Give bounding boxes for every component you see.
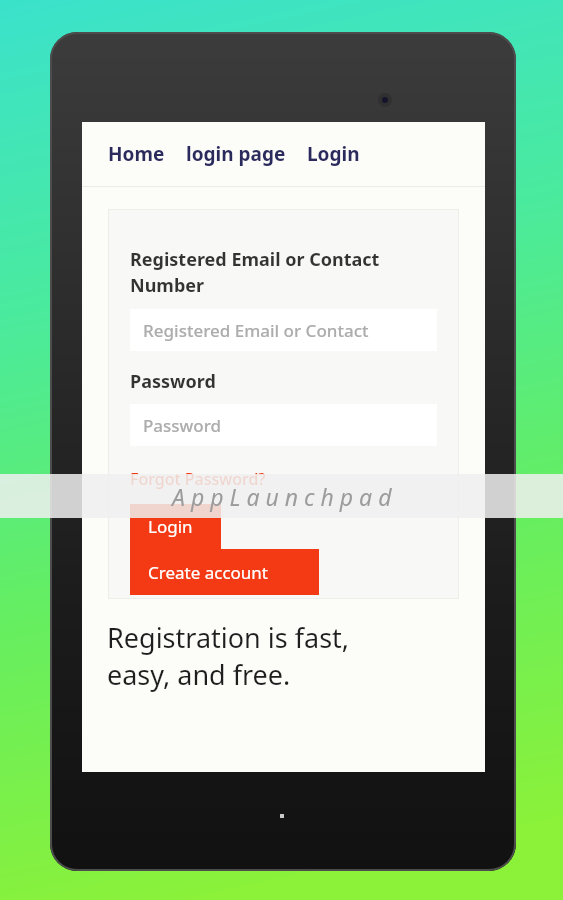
staticText: login page (186, 141, 286, 167)
staticText: Login (148, 515, 193, 538)
button[interactable]: Create account (130, 549, 319, 595)
staticText: A p p L a u n c h p a d (172, 481, 392, 512)
staticText: Create account (148, 561, 268, 584)
staticText: Forgot Password? (130, 468, 266, 490)
button[interactable]: Login (130, 504, 221, 549)
staticText: Home (108, 141, 165, 167)
button[interactable]: Login (307, 141, 360, 167)
staticText: Registered Email or Contact (143, 319, 369, 342)
staticText: Registration is fast, easy, and free. (107, 619, 350, 693)
button[interactable]: Password (130, 404, 437, 446)
button[interactable]: Home (108, 141, 165, 167)
staticText: Password (143, 414, 222, 437)
button[interactable]: Forgot Password? (130, 468, 266, 490)
staticText: Registered Email or Contact Number (130, 247, 380, 298)
staticText: Password (130, 369, 216, 394)
button[interactable]: login page (186, 141, 286, 167)
staticText: Login (307, 141, 360, 167)
button[interactable]: Registered Email or Contact (130, 309, 437, 351)
